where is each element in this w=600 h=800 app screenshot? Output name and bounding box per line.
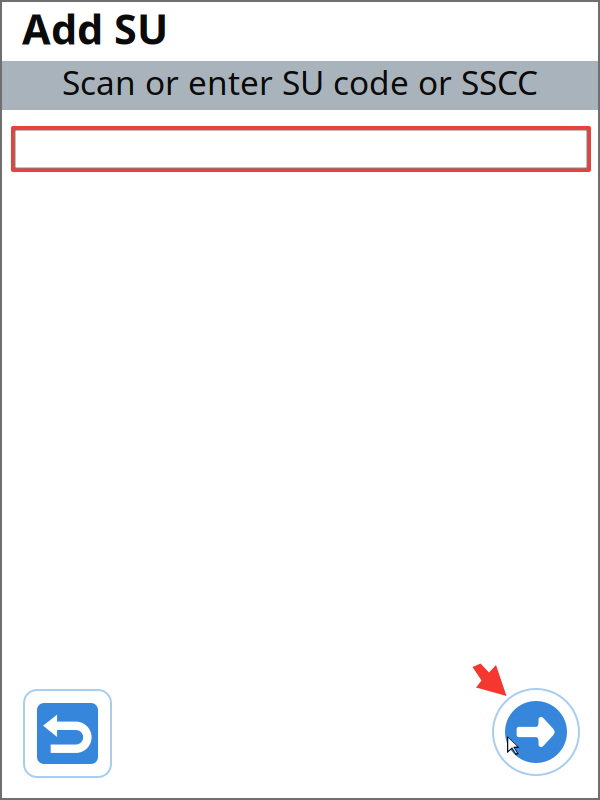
button[interactable]: Next: [493, 689, 579, 775]
button[interactable]: Back: [24, 690, 111, 777]
staticText: Add SU: [22, 1, 168, 56]
button[interactable]: SU code or SSCC: [11, 126, 591, 172]
staticText: Scan or enter SU code or SSCC: [62, 60, 538, 104]
